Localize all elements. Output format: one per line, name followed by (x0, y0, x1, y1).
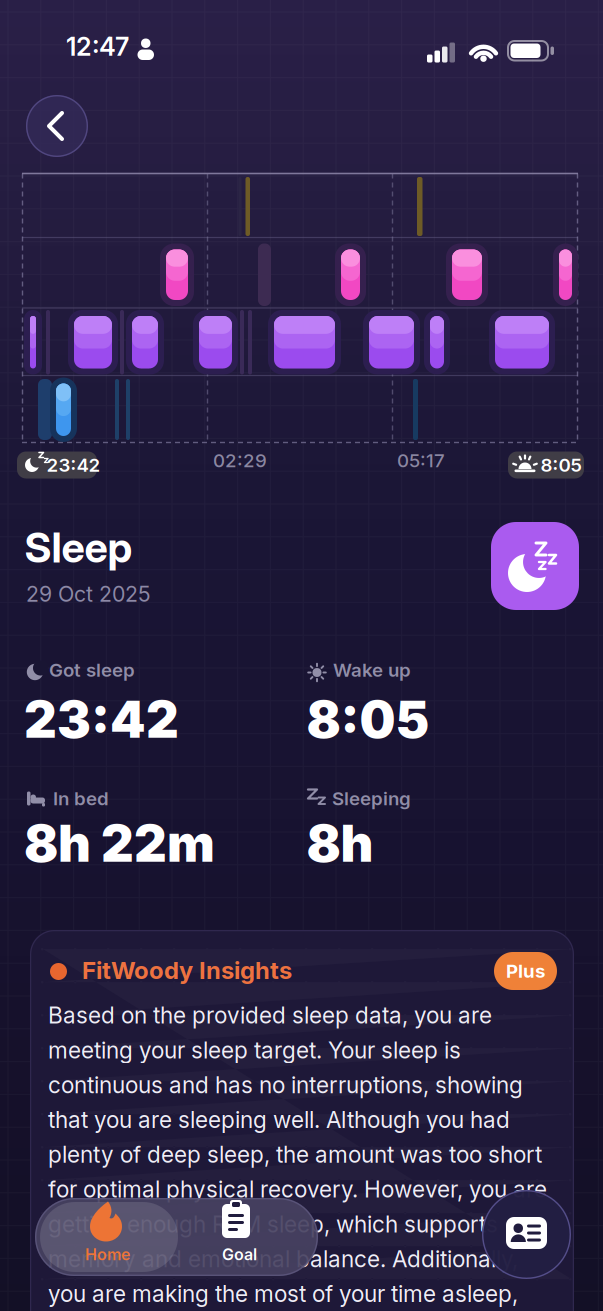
staticText: continuous and has no interruptions, sho… (48, 1072, 523, 1098)
staticText: 8h 22m (24, 813, 215, 873)
staticText: FitWoody Insights (82, 956, 292, 984)
staticText: Wake up (333, 659, 411, 681)
staticText: you are making the most of your time asl… (48, 1280, 518, 1307)
staticText: 8h (306, 813, 373, 873)
button[interactable] (26, 95, 88, 157)
staticText: plenty of deep sleep, the amount was too… (48, 1141, 542, 1168)
button[interactable]: Plus (494, 952, 557, 990)
button[interactable] (482, 1190, 571, 1279)
staticText: 8:05 (306, 689, 429, 749)
staticText: 23:42 (46, 454, 100, 476)
staticText: 05:17 (397, 449, 445, 471)
staticText: that you are sleeping well. Although you… (48, 1106, 510, 1133)
staticText: Got sleep (49, 659, 135, 681)
staticText: 8:05 (540, 454, 581, 476)
staticText: getting enough REM sleep, which supports (48, 1211, 498, 1237)
staticText: Sleep (24, 523, 132, 572)
staticText: memory and emotional balance. Additional… (48, 1246, 518, 1272)
staticText: 29 Oct 2025 (26, 581, 151, 607)
staticText: for optimal physical recovery. However, … (48, 1176, 547, 1203)
staticText: meeting your sleep target. Your sleep is (48, 1037, 461, 1063)
staticText: 02:29 (213, 449, 267, 471)
staticText: In bed (53, 787, 109, 809)
button[interactable]: Home (72, 1200, 142, 1270)
staticText: 12:47 (66, 31, 129, 61)
staticText: Based on the provided sleep data, you ar… (48, 1002, 492, 1029)
staticText: Home (85, 1245, 130, 1264)
staticText: Sleeping (332, 787, 411, 809)
staticText: Goal (222, 1245, 257, 1264)
button[interactable]: Goal (201, 1200, 271, 1270)
staticText: Plus (506, 960, 545, 982)
staticText: 23:42 (24, 689, 179, 749)
